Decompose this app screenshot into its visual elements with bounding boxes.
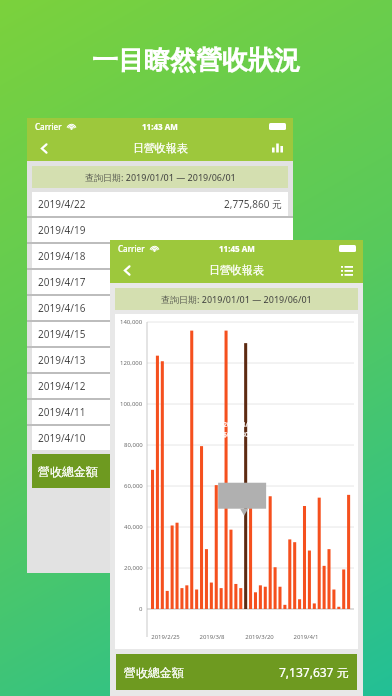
staticText: 2019/3/8 bbox=[199, 633, 225, 641]
staticText: 11:43 AM bbox=[142, 121, 178, 132]
staticText: 2019/4/22 bbox=[38, 197, 86, 211]
button[interactable]: 2019/4/13 bbox=[32, 348, 293, 372]
staticText: 2019/4/12 bbox=[38, 379, 86, 393]
staticText: 查詢日期: 2019/01/01 — 2019/06/01 bbox=[161, 293, 312, 305]
staticText: 查詢日期: 2019/01/01 — 2019/06/01 bbox=[85, 171, 236, 183]
staticText: 2019/4/1 bbox=[293, 633, 319, 641]
staticText: 140,000 bbox=[120, 318, 143, 326]
other: Chart bbox=[261, 135, 293, 161]
button[interactable]: 2019/4/16 bbox=[32, 296, 293, 320]
button[interactable]: Back bbox=[27, 135, 61, 161]
staticText: 80,000 bbox=[124, 441, 143, 449]
staticText: 2019/4/16 bbox=[38, 301, 86, 315]
button[interactable]: 2019/4/19 bbox=[32, 218, 293, 242]
staticText: 2019/4/13 bbox=[38, 353, 86, 367]
button[interactable]: 2019/4/11 bbox=[32, 400, 293, 424]
staticText: 2019/4/15 bbox=[38, 327, 86, 341]
button[interactable]: 2019/4/22 bbox=[32, 192, 288, 216]
staticText: 7,137,637 元 bbox=[279, 664, 349, 680]
button[interactable]: 2019/4/18 bbox=[32, 244, 293, 268]
button[interactable]: 2019/4/17 bbox=[32, 270, 293, 294]
other: List bbox=[331, 257, 363, 283]
button[interactable]: List bbox=[331, 257, 363, 283]
staticText: 11:45 AM bbox=[219, 243, 255, 254]
button[interactable]: 營收總金額 bbox=[32, 454, 293, 488]
button[interactable]: Back bbox=[110, 257, 144, 283]
staticText: 2019/4/10 bbox=[38, 431, 86, 445]
button[interactable]: 2019/4/15 bbox=[32, 322, 293, 346]
button[interactable]: 2019/4/10 bbox=[32, 426, 293, 450]
staticText: 日營收報表 bbox=[209, 263, 264, 277]
staticText: 2019/4/19 bbox=[38, 223, 86, 237]
staticText: 營收總金額 bbox=[124, 665, 184, 680]
staticText: 日營收報表 bbox=[133, 141, 188, 155]
staticText: 20,000 bbox=[124, 564, 143, 572]
staticText: 2019/4/11 bbox=[38, 405, 86, 419]
staticText: 100,000 bbox=[120, 400, 143, 408]
staticText: 0 bbox=[139, 605, 143, 613]
staticText: 120,000 bbox=[120, 359, 143, 367]
staticText: Carrier bbox=[35, 121, 62, 132]
staticText: 2019/2/25 bbox=[151, 633, 180, 641]
button[interactable]: 2019/4/12 bbox=[32, 374, 293, 398]
button[interactable]: Chart bbox=[261, 135, 293, 161]
staticText: 2019/3/15 bbox=[223, 420, 257, 430]
staticText: 2,775,860 元 bbox=[224, 197, 282, 211]
staticText: 2019/4/18 bbox=[38, 249, 86, 263]
staticText: 60,000 bbox=[124, 482, 143, 490]
staticText: Carrier bbox=[118, 243, 145, 254]
staticText: 2019/4/17 bbox=[38, 275, 86, 289]
staticText: 2019/3/20 bbox=[245, 633, 274, 641]
staticText: $61,130 bbox=[223, 430, 249, 440]
staticText: 一目瞭然營收狀況 bbox=[92, 44, 300, 77]
staticText: 40,000 bbox=[124, 523, 143, 531]
staticText: 營收總金額 bbox=[38, 464, 98, 479]
button[interactable]: 營收總金額 bbox=[116, 654, 357, 690]
